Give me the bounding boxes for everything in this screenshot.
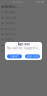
staticText: Sign out xyxy=(5,49,17,52)
button[interactable]: Favorites xyxy=(0,31,20,37)
button[interactable]: Calendar xyxy=(0,15,20,20)
button[interactable]: Trash xyxy=(0,42,20,48)
button[interactable]: Messages xyxy=(0,9,20,15)
staticText: Dashboard xyxy=(5,5,19,8)
staticText: Sign out xyxy=(26,55,38,58)
button[interactable]: Settings xyxy=(0,26,20,31)
staticText: Trash xyxy=(5,43,11,47)
staticText: Messages xyxy=(5,10,17,14)
button[interactable]: Sign out xyxy=(25,54,40,58)
button[interactable]: Cancel xyxy=(7,54,22,58)
staticText: Sign out xyxy=(17,42,29,46)
staticText: Settings xyxy=(12,0,23,4)
staticText: Cancel xyxy=(10,55,19,58)
staticText: Favorites xyxy=(5,32,16,36)
button[interactable]: Dashboard xyxy=(0,4,20,9)
staticText: Archive xyxy=(5,38,15,41)
button[interactable]: Sign out xyxy=(0,48,20,53)
staticText: Calendar xyxy=(5,16,17,19)
staticText: Settings xyxy=(5,27,16,30)
button[interactable]: Documents xyxy=(0,20,20,26)
button[interactable]: Archive xyxy=(0,37,20,42)
staticText: Documents xyxy=(5,21,19,25)
staticText: You will be logged out. xyxy=(7,46,40,50)
